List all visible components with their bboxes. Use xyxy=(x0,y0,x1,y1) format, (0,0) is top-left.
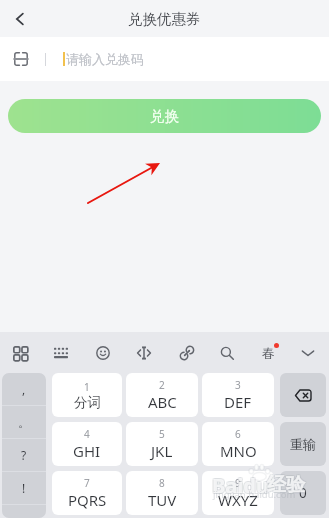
staticText: ! xyxy=(22,480,26,496)
staticText: 经验 xyxy=(268,473,306,497)
staticText: 经验 xyxy=(266,473,304,497)
staticText: 。 xyxy=(18,415,30,430)
staticText: 经验 xyxy=(268,474,306,498)
staticText: Baidu xyxy=(211,472,268,499)
button[interactable]: Keyboard layout xyxy=(47,332,75,373)
staticText: ABC xyxy=(148,392,177,412)
staticText: Baidu xyxy=(213,472,270,499)
staticText: 经验 xyxy=(266,472,304,496)
staticText: 4 xyxy=(84,427,90,441)
staticText: Baidu xyxy=(212,471,269,498)
button[interactable]: Hide keyboard xyxy=(294,332,322,373)
button[interactable]: Scan code xyxy=(8,46,34,72)
staticText: TUV xyxy=(148,490,177,510)
button[interactable]: Back xyxy=(0,0,40,37)
staticText: Baidu xyxy=(213,473,270,500)
button[interactable]: ! xyxy=(2,472,46,504)
staticText: Baidu xyxy=(213,471,270,498)
staticText: 经验 xyxy=(267,472,305,496)
button[interactable]: 3 xyxy=(202,373,274,417)
staticText: Baidu xyxy=(211,473,268,500)
button[interactable]: 2 xyxy=(126,373,198,417)
button[interactable]: 0 xyxy=(280,471,326,515)
staticText: 经验 xyxy=(267,474,305,498)
staticText: MNO xyxy=(220,441,257,461)
staticText: DEF xyxy=(224,392,252,412)
staticText: 0 xyxy=(299,484,307,502)
staticText: 7 xyxy=(84,476,90,490)
button[interactable]: 重输 xyxy=(280,422,326,466)
staticText: 6 xyxy=(235,427,241,441)
staticText: Baidu xyxy=(211,471,268,498)
button[interactable]: 兑换 xyxy=(8,99,321,133)
staticText: GHI xyxy=(73,441,101,461)
button[interactable] xyxy=(2,505,46,518)
staticText: 经验 xyxy=(268,472,306,496)
staticText: , xyxy=(22,381,26,397)
staticText: 兑换 xyxy=(150,107,179,125)
staticText: 请输入兑换码 xyxy=(66,51,144,67)
staticText: WXYZ xyxy=(218,490,258,510)
button[interactable]: 5 xyxy=(126,422,198,466)
button[interactable]: ? xyxy=(2,439,46,471)
staticText: Baidu xyxy=(212,472,269,499)
staticText: PQRS xyxy=(68,490,107,510)
button[interactable]: Clipboard xyxy=(173,332,201,373)
button[interactable]: 9 xyxy=(202,471,274,515)
staticText: 1 xyxy=(84,380,90,394)
staticText: 3 xyxy=(235,378,241,392)
staticText: 9 xyxy=(235,476,241,490)
button[interactable]: 7 xyxy=(52,471,122,515)
staticText: 经验 xyxy=(267,473,305,497)
button[interactable]: Backspace xyxy=(280,373,326,417)
button[interactable]: 6 xyxy=(202,422,274,466)
staticText: 兑换优惠券 xyxy=(128,10,201,28)
button[interactable]: 8 xyxy=(126,471,198,515)
staticText: 5 xyxy=(159,427,165,441)
staticText: ? xyxy=(21,447,27,463)
button[interactable]: 1 xyxy=(52,373,122,417)
staticText: 重输 xyxy=(290,436,316,452)
button[interactable]: 春 xyxy=(255,332,281,373)
staticText: 2 xyxy=(159,378,165,392)
staticText: JKL xyxy=(151,441,173,461)
button[interactable]: Search xyxy=(213,332,241,373)
staticText: Baidu xyxy=(212,473,269,500)
staticText: 分词 xyxy=(74,394,101,411)
button[interactable]: , xyxy=(2,373,46,405)
staticText: 经验 xyxy=(266,474,304,498)
staticText: 8 xyxy=(159,476,165,490)
button[interactable]: Emoji xyxy=(89,332,117,373)
staticText: jingyan.baidu.com xyxy=(213,488,296,501)
button[interactable]: Move cursor xyxy=(130,332,158,373)
button[interactable]: Symbols xyxy=(6,332,34,373)
button[interactable]: 4 xyxy=(52,422,122,466)
button[interactable]: 。 xyxy=(2,406,46,438)
staticText: 春 xyxy=(262,345,275,361)
